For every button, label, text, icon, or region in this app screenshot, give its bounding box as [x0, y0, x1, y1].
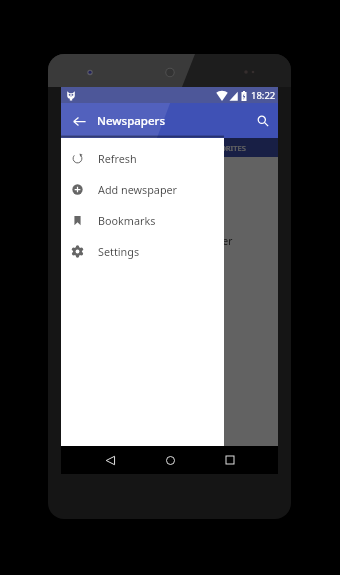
button[interactable]: Refresh	[61, 143, 224, 174]
button[interactable]: Search	[251, 109, 275, 133]
staticText: Add newspaper	[98, 182, 178, 197]
button[interactable]: Bookmarks	[61, 205, 224, 236]
staticText: Newspapers	[97, 113, 166, 129]
button[interactable]: Navigate up	[67, 109, 91, 133]
button[interactable]: Recent apps	[218, 448, 242, 472]
staticText: Refresh	[98, 151, 137, 166]
button[interactable]: Add newspaper	[61, 174, 224, 205]
button[interactable]: Back	[98, 448, 122, 472]
staticText: Bookmarks	[98, 213, 156, 228]
staticText: 18:22	[251, 89, 276, 102]
button[interactable]: Settings	[61, 236, 224, 267]
staticText: Settings	[98, 244, 140, 259]
button[interactable]: Home	[158, 448, 182, 472]
staticText: Newspaper	[179, 234, 233, 248]
staticText: FAVORITES	[207, 143, 246, 153]
